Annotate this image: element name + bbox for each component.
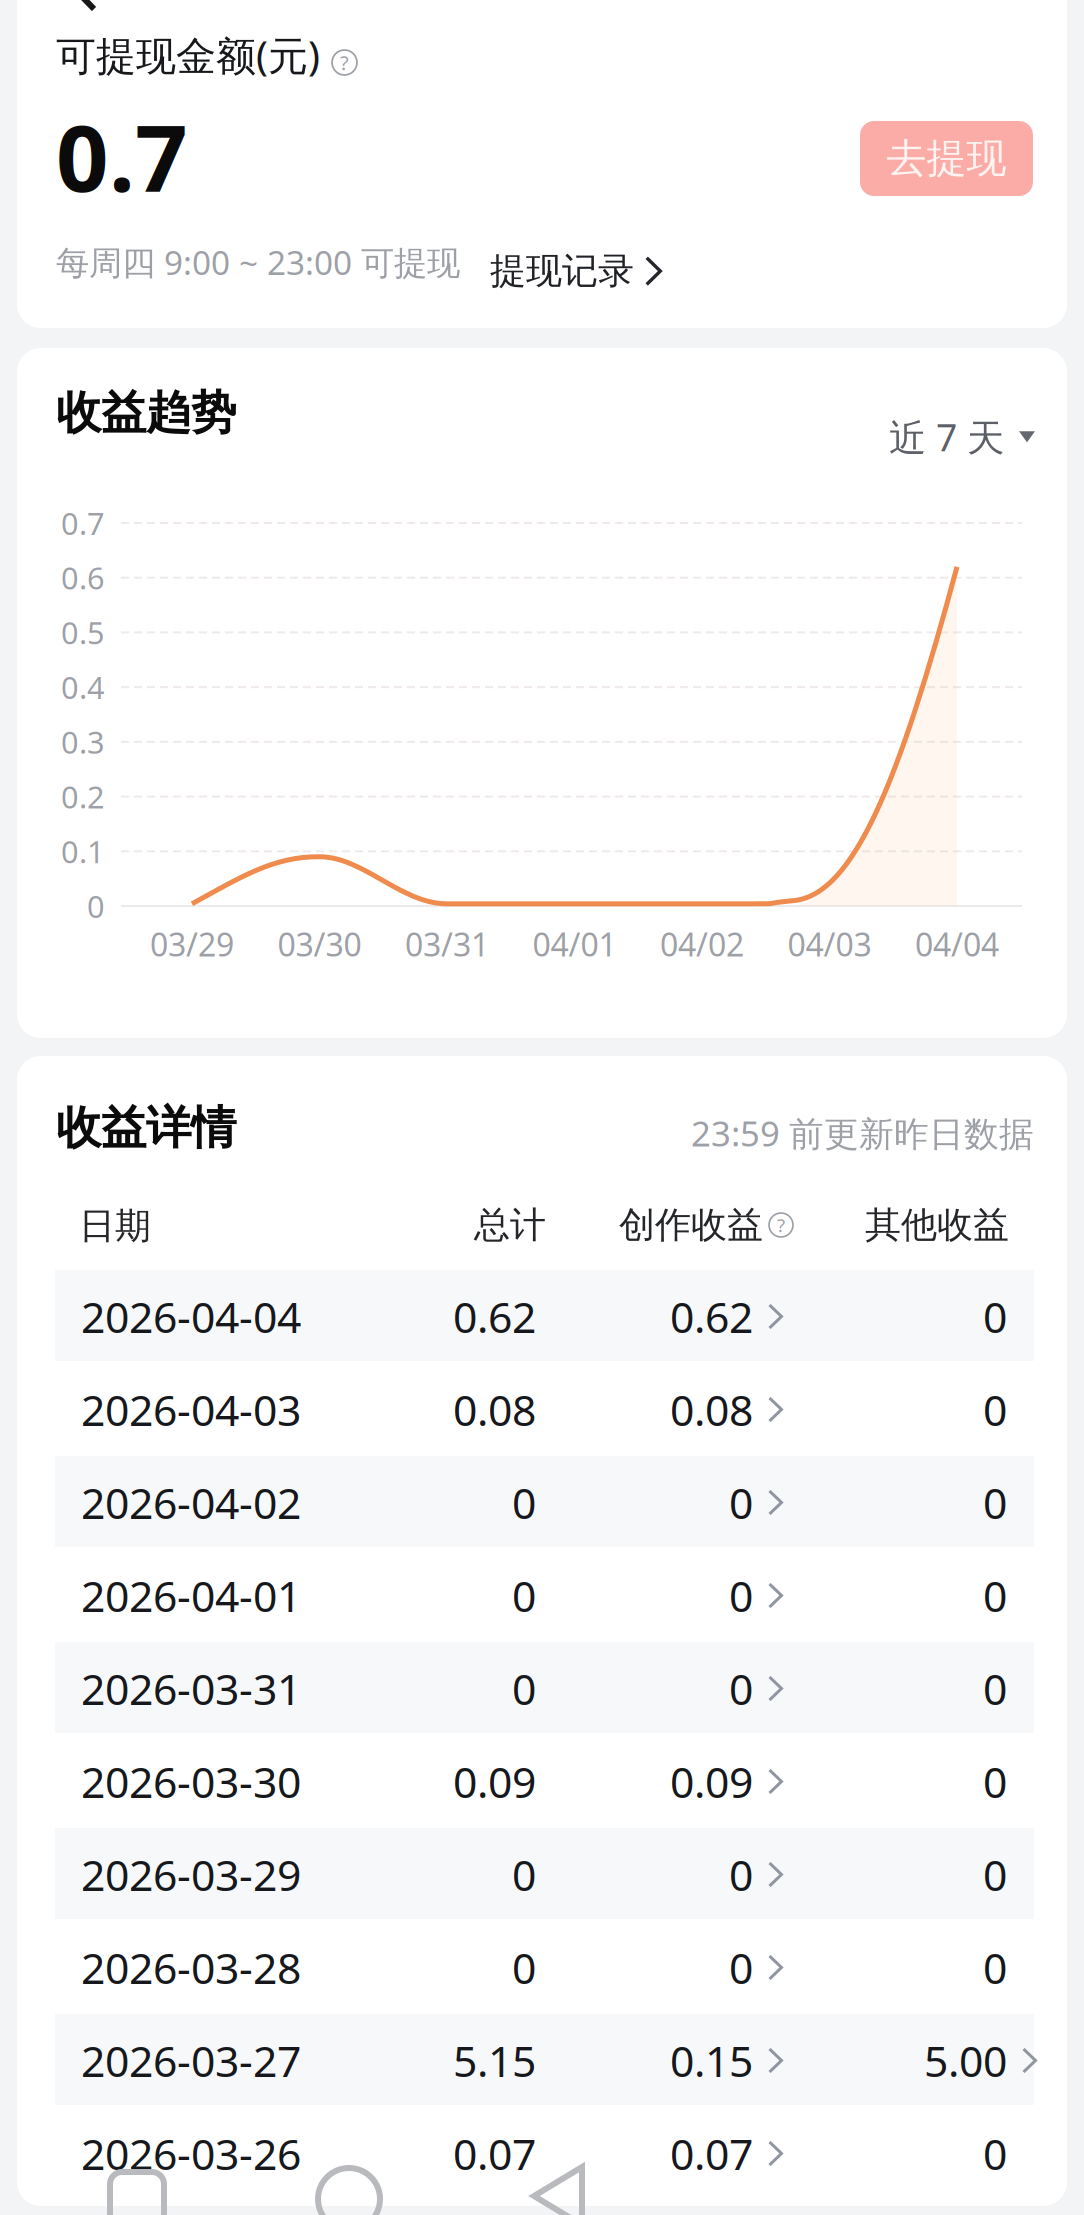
button[interactable]: 2026-03-30 — [0, 0, 1084, 2215]
button[interactable]: Home — [318, 2168, 380, 2215]
button[interactable]: 2026-03-26 — [0, 0, 1084, 2215]
button[interactable]: 近 7 天 — [889, 402, 1035, 472]
staticText: 5.15 — [453, 2032, 536, 2089]
staticText: 2026-03-29 — [81, 1846, 301, 1903]
button[interactable]: 2026-03-27 — [0, 0, 1084, 2215]
staticText: 创作收益 — [619, 1203, 763, 1247]
button[interactable]: 2026-04-02 — [0, 0, 1084, 2215]
button[interactable]: Back — [530, 2164, 586, 2215]
button[interactable]: 2026-04-01 — [0, 0, 1084, 2215]
staticText: 收益详情 — [56, 1100, 236, 1156]
staticText: 04/03 — [787, 923, 871, 965]
staticText: 0 — [983, 1288, 1007, 1345]
staticText: 日期 — [79, 1204, 151, 1248]
staticText: 0.62 — [453, 1288, 536, 1345]
staticText: 0.08 — [670, 1381, 753, 1438]
staticText: 2026-03-27 — [81, 2032, 301, 2089]
staticText: 0.07 — [670, 2125, 753, 2182]
staticText: 0.09 — [453, 1753, 536, 1810]
staticText: 03/31 — [405, 923, 489, 965]
staticText: 0 — [512, 1567, 536, 1624]
staticText: 2026-04-01 — [81, 1567, 301, 1624]
button[interactable]: Recents — [110, 2172, 164, 2215]
staticText: 03/30 — [277, 923, 361, 965]
staticText: 提现记录 — [490, 249, 634, 293]
button[interactable]: 2026-04-04 — [0, 0, 1084, 2215]
staticText: 可提现金额(元) — [56, 28, 320, 81]
staticText: 0.3 — [61, 721, 105, 762]
staticText: 04/01 — [532, 923, 616, 965]
staticText: 03/29 — [150, 923, 234, 965]
staticText: 收益趋势 — [56, 385, 236, 441]
button[interactable]: 提现记录 — [490, 239, 662, 303]
staticText: 5.00 — [924, 2032, 1007, 2089]
staticText: 2026-03-26 — [81, 2125, 301, 2182]
staticText: 0.15 — [670, 2032, 753, 2089]
staticText: 0 — [983, 1753, 1007, 1810]
staticText: 0 — [729, 1660, 753, 1717]
button[interactable]: 关于可提现金额 — [324, 42, 365, 83]
staticText: 0 — [983, 1474, 1007, 1531]
staticText: 0 — [512, 1660, 536, 1717]
staticText: 2026-03-31 — [81, 1660, 301, 1717]
staticText: 23:59 前更新昨日数据 — [691, 1110, 1034, 1156]
staticText: 0 — [983, 1381, 1007, 1438]
staticText: 0.5 — [61, 612, 105, 653]
button[interactable]: 2026-03-29 — [0, 0, 1084, 2215]
staticText: 0.1 — [61, 831, 105, 872]
button[interactable]: 2026-03-28 — [0, 0, 1084, 2215]
staticText: 04/04 — [915, 923, 999, 965]
staticText: 0 — [983, 2125, 1007, 2182]
button[interactable]: 2026-03-31 — [0, 0, 1084, 2215]
staticText: 0 — [729, 1567, 753, 1624]
staticText: 2026-04-04 — [81, 1288, 301, 1345]
staticText: 0.2 — [61, 776, 105, 817]
staticText: 0.7 — [56, 95, 188, 217]
staticText: 0 — [983, 1939, 1007, 1996]
staticText: 0 — [729, 1474, 753, 1531]
staticText: 0 — [729, 1846, 753, 1903]
staticText: 每周四 9:00 ~ 23:00 可提现 — [56, 240, 460, 284]
staticText: 0 — [983, 1846, 1007, 1903]
staticText: 0 — [512, 1939, 536, 1996]
staticText: 0.07 — [453, 2125, 536, 2182]
staticText: 2026-03-28 — [81, 1939, 301, 1996]
staticText: 其他收益 — [865, 1203, 1009, 1247]
staticText: 0 — [87, 886, 105, 926]
staticText: 0.08 — [453, 1381, 536, 1438]
button[interactable]: 2026-04-03 — [0, 0, 1084, 2215]
staticText: 0 — [983, 1660, 1007, 1717]
staticText: 0 — [983, 1567, 1007, 1624]
staticText: 0.62 — [670, 1288, 753, 1345]
staticText: 0 — [512, 1474, 536, 1531]
staticText: 0.7 — [61, 503, 105, 543]
staticText: 2026-04-02 — [81, 1474, 301, 1531]
staticText: 2026-04-03 — [81, 1381, 301, 1438]
staticText: 0.6 — [61, 557, 105, 598]
staticText: 0.4 — [61, 667, 105, 707]
staticText: ? — [777, 1213, 785, 1237]
staticText: 0.09 — [670, 1753, 753, 1810]
staticText: 去提现 — [886, 134, 1006, 183]
staticText: 2026-03-30 — [81, 1753, 301, 1810]
staticText: 0 — [729, 1939, 753, 1996]
staticText: 04/02 — [660, 923, 744, 965]
button[interactable]: 去提现 — [860, 121, 1033, 196]
staticText: 0 — [512, 1846, 536, 1903]
staticText: 近 7 天 — [889, 412, 1004, 462]
staticText: ? — [340, 49, 349, 76]
staticText: 总计 — [474, 1203, 546, 1247]
